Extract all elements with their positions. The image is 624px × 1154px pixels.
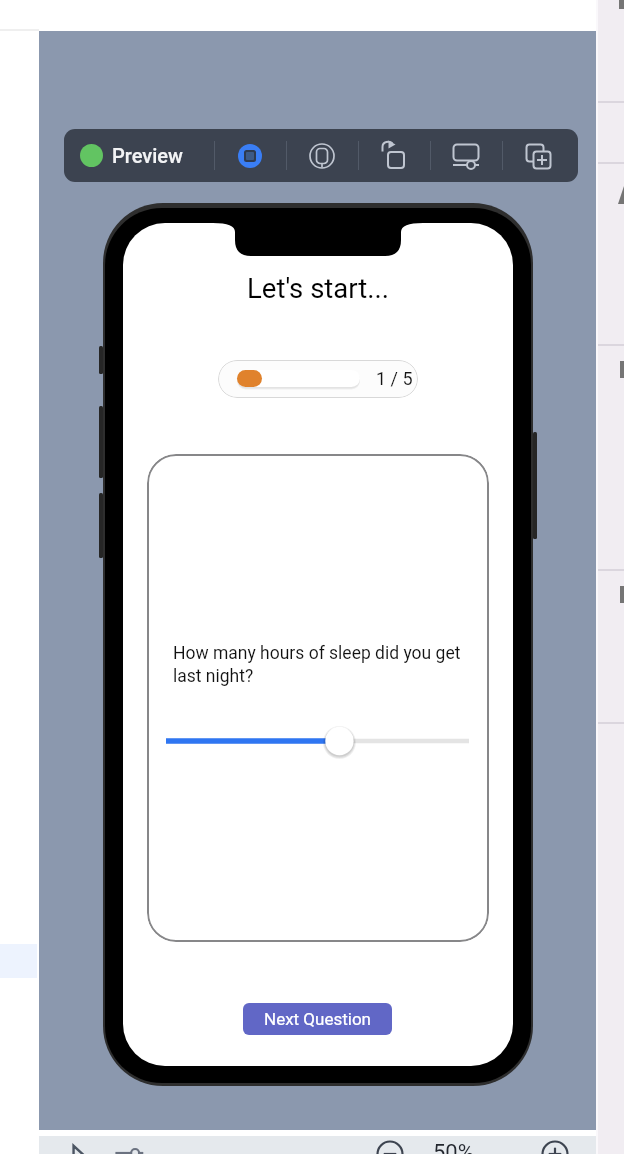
staticText: Preview <box>112 144 183 167</box>
button[interactable]: Copy preview <box>502 129 574 182</box>
staticText: 50% <box>433 1140 474 1154</box>
button[interactable]: Preview <box>64 129 278 182</box>
staticText: Let's start... <box>247 272 390 304</box>
button[interactable]: Next Question <box>243 1003 392 1035</box>
staticText: Next Question <box>264 1009 371 1029</box>
staticText: How many hours of sleep did you get last… <box>173 643 465 686</box>
button[interactable]: Run preview <box>358 129 430 182</box>
button[interactable]: Select tool <box>63 1140 95 1154</box>
staticText: 1 / 5 <box>376 368 413 389</box>
button[interactable]: UI Check mode <box>286 129 358 182</box>
button[interactable]: Interactive mode <box>214 129 286 182</box>
button[interactable]: Zoom in <box>541 1140 569 1154</box>
button[interactable]: Device settings <box>430 129 502 182</box>
button[interactable]: Design options <box>112 1140 146 1154</box>
button[interactable]: Zoom out <box>376 1140 404 1154</box>
